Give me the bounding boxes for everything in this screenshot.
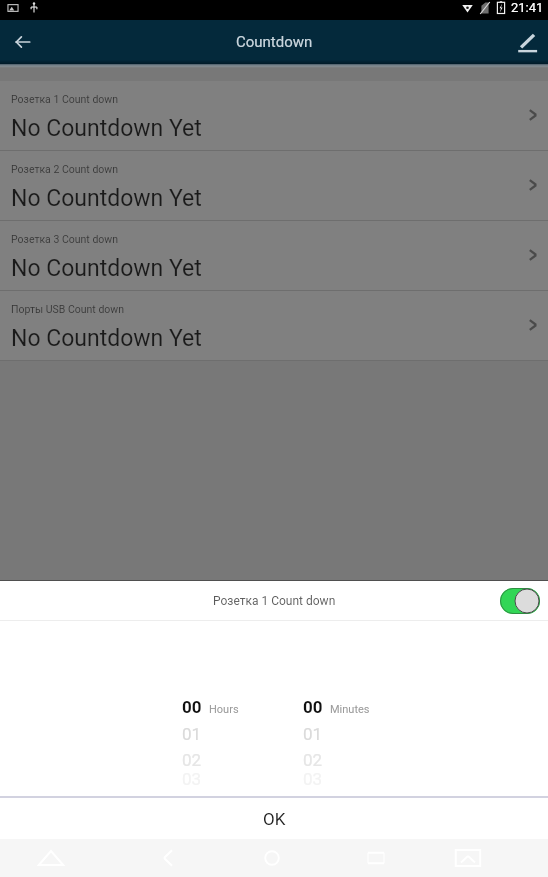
- staticText: Розетка 2 Count down: [11, 163, 118, 175]
- button[interactable]: Розетка 1 Count down: [0, 581, 548, 620]
- staticText: No Countdown Yet: [11, 255, 202, 282]
- staticText: OK: [263, 809, 286, 829]
- button[interactable]: Розетка 1 Count down: [0, 81, 548, 151]
- button[interactable]: Порты USB Count down: [0, 291, 548, 361]
- button[interactable]: OK: [0, 798, 548, 839]
- button[interactable]: Розетка 2 Count down: [0, 151, 548, 221]
- staticText: 03: [303, 769, 323, 789]
- staticText: Розетка 3 Count down: [11, 233, 118, 245]
- staticText: No Countdown Yet: [11, 325, 202, 352]
- button[interactable]: Edit: [508, 23, 546, 61]
- staticText: 03: [182, 769, 202, 789]
- other: Open: [525, 177, 541, 193]
- staticText: 02: [303, 750, 323, 770]
- staticText: 00: [303, 697, 323, 717]
- staticText: No Countdown Yet: [11, 115, 202, 142]
- staticText: Розетка 1 Count down: [11, 93, 118, 105]
- button[interactable]: Enable countdown: [500, 588, 540, 614]
- staticText: Countdown: [236, 33, 313, 51]
- staticText: Розетка 1 Count down: [213, 594, 336, 608]
- other: Open: [525, 247, 541, 263]
- staticText: Порты USB Count down: [11, 303, 125, 315]
- button[interactable]: Розетка 3 Count down: [0, 221, 548, 291]
- staticText: 00: [182, 697, 202, 717]
- staticText: No Countdown Yet: [11, 185, 202, 212]
- staticText: 01: [182, 724, 202, 744]
- other: Open: [525, 107, 541, 123]
- other: Open: [525, 317, 541, 333]
- staticText: Hours: [209, 703, 239, 716]
- staticText: 02: [182, 750, 202, 770]
- button[interactable]: Back: [6, 23, 44, 61]
- staticText: 01: [303, 724, 323, 744]
- staticText: 21:41: [511, 0, 544, 15]
- staticText: Minutes: [330, 703, 370, 716]
